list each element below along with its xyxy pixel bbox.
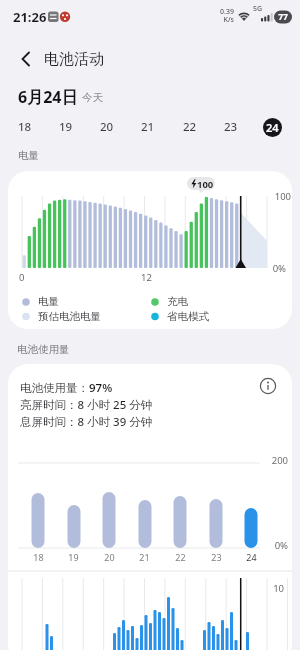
staticText: 21 — [141, 119, 155, 135]
button[interactable]: 24 — [258, 113, 286, 141]
button[interactable]: 22 — [176, 113, 204, 141]
staticText: 100 — [273, 190, 291, 650]
staticText: 0.39 — [214, 7, 234, 650]
staticText: 100 — [197, 178, 214, 191]
staticText: 18 — [32, 551, 45, 650]
staticText: 12 — [141, 271, 152, 284]
staticText: K/s — [214, 15, 234, 650]
staticText: 电池使用量：97% — [20, 380, 113, 396]
staticText: 23 — [210, 551, 223, 650]
staticText: 18 — [18, 119, 32, 135]
button[interactable]: 21 — [134, 113, 162, 141]
button[interactable]: 19 — [52, 113, 80, 141]
staticText: 电池活动 — [44, 50, 104, 69]
staticText: 息屏时间：8 小时 39 分钟 — [20, 414, 153, 430]
button[interactable] — [258, 376, 278, 396]
staticText: 6月24日 — [18, 86, 78, 108]
staticText: 20 — [100, 119, 114, 135]
staticText: 200 — [268, 454, 288, 650]
staticText: 0% — [268, 539, 288, 650]
button[interactable]: 23 — [217, 113, 245, 141]
staticText: 21 — [138, 551, 151, 650]
staticText: 22 — [174, 551, 187, 650]
staticText: 22 — [183, 119, 197, 135]
button[interactable]: 20 — [93, 113, 121, 141]
button[interactable] — [12, 44, 42, 74]
staticText: 省电模式 — [167, 310, 209, 323]
staticText: 24 — [245, 551, 258, 650]
staticText: 充电 — [167, 295, 188, 308]
button[interactable]: 18 — [11, 113, 39, 141]
staticText: 电池使用量 — [17, 343, 70, 356]
staticText: 10 — [266, 582, 284, 650]
staticText: 24 — [266, 120, 279, 135]
staticText: 5G — [253, 4, 263, 14]
staticText: 77 — [274, 11, 292, 650]
staticText: 0% — [270, 262, 286, 650]
staticText: 电量 — [18, 149, 39, 162]
staticText: 0 — [19, 271, 25, 284]
staticText: 20 — [103, 551, 116, 650]
staticText: 19 — [67, 551, 80, 650]
staticText: 电量 — [38, 295, 59, 308]
staticText: 预估电池电量 — [38, 310, 101, 323]
staticText: 19 — [59, 119, 73, 135]
staticText: 今天 — [82, 91, 103, 104]
staticText: 21:26 — [13, 8, 47, 26]
staticText: 亮屏时间：8 小时 25 分钟 — [20, 397, 153, 413]
staticText: 23 — [224, 119, 238, 135]
